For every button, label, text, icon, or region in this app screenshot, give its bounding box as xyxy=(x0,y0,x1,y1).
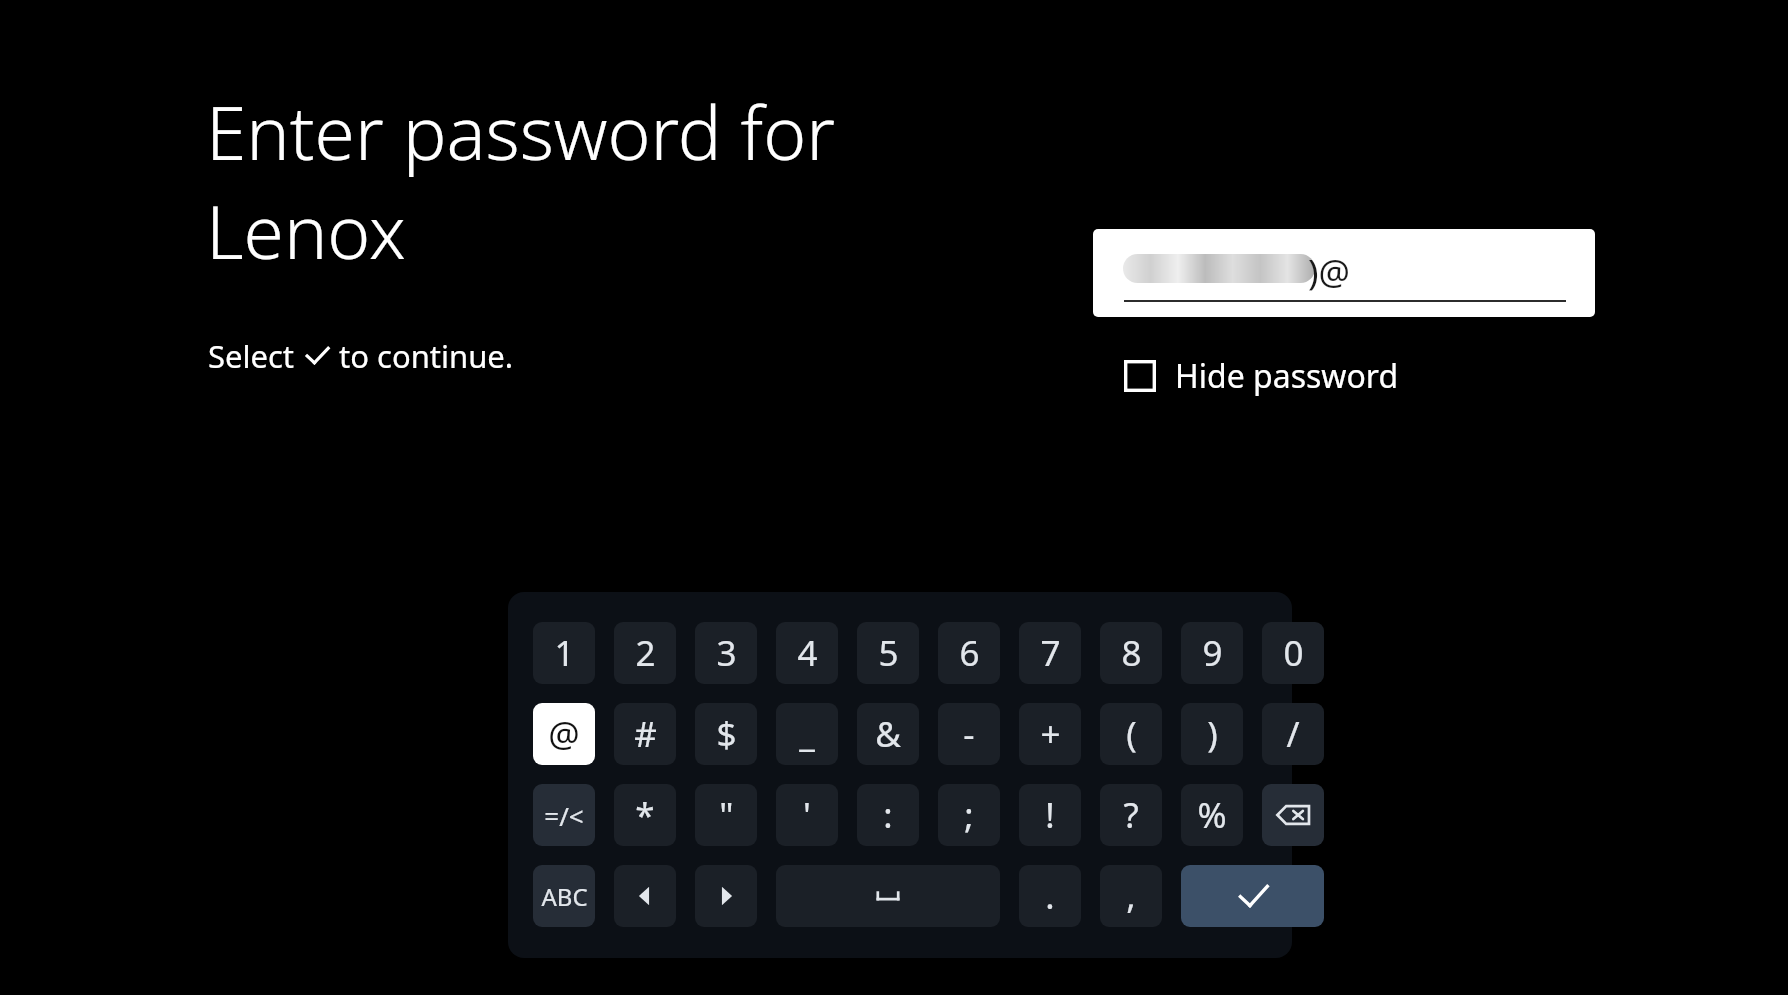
staticText: ; xyxy=(964,791,974,839)
staticText: $ xyxy=(716,710,737,758)
button[interactable]: _ xyxy=(776,703,838,765)
button[interactable]: + xyxy=(1019,703,1081,765)
staticText: 0 xyxy=(1283,629,1304,677)
staticText: 3 xyxy=(716,629,737,677)
button[interactable]: ; xyxy=(938,784,1000,846)
button[interactable]: ABC xyxy=(533,865,595,927)
button[interactable]: & xyxy=(857,703,919,765)
button[interactable]: ' xyxy=(776,784,838,846)
staticText: ABC xyxy=(541,880,588,913)
staticText: ! xyxy=(1045,791,1055,839)
button[interactable]: 5 xyxy=(857,622,919,684)
staticText: . xyxy=(1045,872,1055,920)
button[interactable]: Password xyxy=(1093,229,1595,317)
button[interactable]: 9 xyxy=(1181,622,1243,684)
button[interactable]: $ xyxy=(695,703,757,765)
staticText: * xyxy=(635,791,655,839)
staticText: # xyxy=(634,710,657,758)
staticText: Hide password xyxy=(1175,354,1399,398)
button[interactable]: ( xyxy=(1100,703,1162,765)
button[interactable]: Enter xyxy=(1181,865,1324,927)
staticText: - xyxy=(963,710,975,758)
button[interactable]: ! xyxy=(1019,784,1081,846)
button[interactable]: " xyxy=(695,784,757,846)
button[interactable]: Move left xyxy=(614,865,676,927)
staticText: 8 xyxy=(1121,629,1142,677)
button[interactable]: 6 xyxy=(938,622,1000,684)
button[interactable]: 1 xyxy=(533,622,595,684)
button[interactable]: % xyxy=(1181,784,1243,846)
button[interactable]: 7 xyxy=(1019,622,1081,684)
staticText: & xyxy=(875,710,901,758)
button[interactable]: : xyxy=(857,784,919,846)
staticText: Enter password for xyxy=(206,82,835,181)
button[interactable]: 4 xyxy=(776,622,838,684)
button[interactable]: Move right xyxy=(695,865,757,927)
staticText: 7 xyxy=(1040,629,1061,677)
button[interactable]: Space xyxy=(776,865,1000,927)
staticText: Select xyxy=(208,335,295,377)
staticText: , xyxy=(1126,872,1136,920)
staticText: 9 xyxy=(1202,629,1223,677)
staticText: 5 xyxy=(878,629,899,677)
staticText: % xyxy=(1197,791,1227,839)
button[interactable]: =/< xyxy=(533,784,595,846)
staticText: : xyxy=(883,791,893,839)
staticText: / xyxy=(1286,710,1300,758)
button[interactable]: ) xyxy=(1181,703,1243,765)
button[interactable]: Backspace xyxy=(1262,784,1324,846)
staticText: 1 xyxy=(554,629,575,677)
button[interactable]: Hide password xyxy=(1124,354,1399,398)
staticText: to continue. xyxy=(339,335,514,377)
button[interactable]: / xyxy=(1262,703,1324,765)
staticText: _ xyxy=(799,710,815,758)
staticText: )@ xyxy=(1308,248,1350,296)
button[interactable]: 3 xyxy=(695,622,757,684)
staticText: ( xyxy=(1126,710,1137,758)
staticText: ? xyxy=(1123,791,1139,839)
button[interactable]: # xyxy=(614,703,676,765)
staticText: Lenox xyxy=(206,181,406,280)
button[interactable]: ? xyxy=(1100,784,1162,846)
staticText: + xyxy=(1040,710,1061,758)
button[interactable]: 8 xyxy=(1100,622,1162,684)
staticText: ) xyxy=(1207,710,1218,758)
button[interactable]: * xyxy=(614,784,676,846)
button[interactable]: 0 xyxy=(1262,622,1324,684)
staticText: 2 xyxy=(635,629,656,677)
button[interactable]: 2 xyxy=(614,622,676,684)
staticText: @ xyxy=(548,710,580,758)
button[interactable]: . xyxy=(1019,865,1081,927)
staticText: 4 xyxy=(797,629,818,677)
button[interactable]: , xyxy=(1100,865,1162,927)
staticText: =/< xyxy=(544,798,584,833)
button[interactable]: @ xyxy=(533,703,595,765)
staticText: " xyxy=(719,791,734,839)
button[interactable]: - xyxy=(938,703,1000,765)
staticText: ' xyxy=(803,791,811,839)
staticText: 6 xyxy=(959,629,980,677)
